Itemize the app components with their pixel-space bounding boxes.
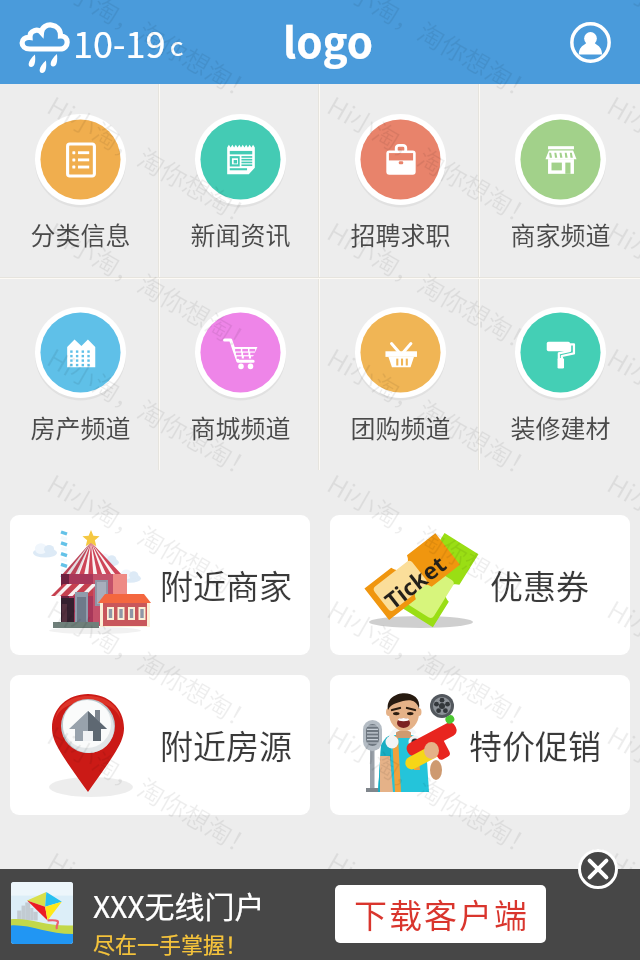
staticText: 下载客户端 — [353, 890, 528, 938]
button[interactable]: 10-19 — [0, 0, 192, 84]
button[interactable]: Profile — [566, 18, 614, 66]
button[interactable]: 附近商家 — [10, 515, 310, 655]
button[interactable]: 招聘求职 — [320, 84, 480, 277]
button[interactable]: 下载客户端 — [335, 885, 546, 943]
staticText: 招聘求职 — [350, 216, 451, 252]
staticText: 装修建材 — [510, 409, 611, 445]
staticText: 优惠券 — [490, 561, 589, 609]
button[interactable]: 新闻资讯 — [160, 84, 320, 277]
button[interactable]: 房产频道 — [0, 279, 160, 470]
staticText: 商家频道 — [510, 216, 611, 252]
staticText: 尽在一手掌握！ — [93, 927, 248, 959]
staticText: 团购频道 — [350, 409, 451, 445]
staticText: 附近商家 — [160, 561, 292, 609]
button[interactable]: 团购频道 — [320, 279, 480, 470]
button[interactable]: 商城频道 — [160, 279, 320, 470]
staticText: 新闻资讯 — [190, 216, 291, 252]
staticText: 房产频道 — [30, 409, 131, 445]
button[interactable]: 装修建材 — [480, 279, 640, 470]
staticText: c — [170, 26, 184, 64]
staticText: XXX无线门户 — [93, 883, 265, 926]
button[interactable]: 附近房源 — [10, 675, 310, 815]
button[interactable]: 优惠券 — [330, 515, 630, 655]
button[interactable]: 分类信息 — [0, 84, 160, 277]
button[interactable]: Close ad — [577, 848, 619, 890]
button[interactable]: 商家频道 — [480, 84, 640, 277]
staticText: 分类信息 — [30, 216, 131, 252]
staticText: 10-19 — [73, 16, 166, 68]
button[interactable]: logo — [283, 9, 374, 70]
staticText: 特价促销 — [469, 721, 601, 769]
staticText: 商城频道 — [190, 409, 291, 445]
staticText: 附近房源 — [160, 721, 292, 769]
button[interactable]: 特价促销 — [330, 675, 630, 815]
